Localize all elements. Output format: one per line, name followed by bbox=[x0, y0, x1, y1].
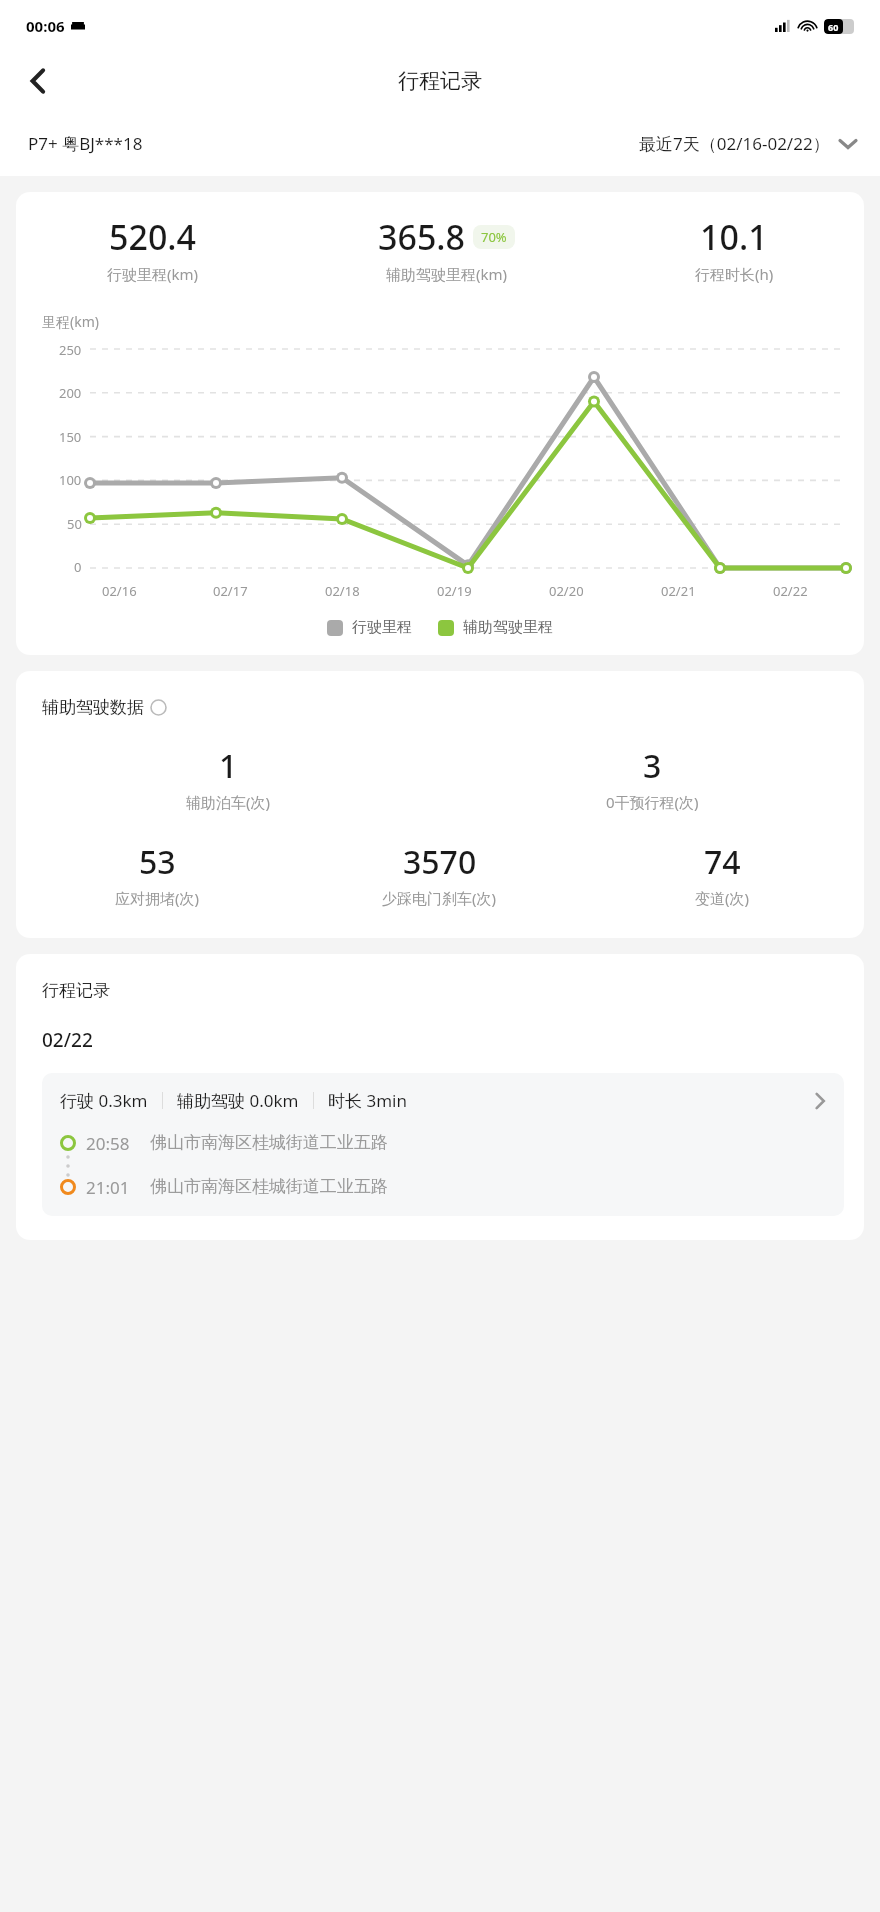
staticText: 02/19 bbox=[437, 582, 472, 600]
staticText: 21:01 bbox=[86, 1176, 130, 1199]
button[interactable]: 行驶 0.3km bbox=[42, 1073, 844, 1216]
staticText: 辅助驾驶数据 bbox=[42, 697, 144, 718]
staticText: 520.4 bbox=[109, 214, 197, 260]
staticText: 1 bbox=[219, 744, 238, 788]
button[interactable]: P7+ 粤BJ***18 bbox=[28, 132, 143, 155]
staticText: 佛山市南海区桂城街道工业五路 bbox=[150, 1176, 388, 1197]
staticText: 辅助驾驶里程(km) bbox=[386, 264, 508, 284]
staticText: 20:58 bbox=[86, 1132, 130, 1155]
staticText: 辅助驾驶 0.0km bbox=[177, 1089, 299, 1112]
staticText: 150 bbox=[59, 428, 82, 446]
staticText: 行驶里程 bbox=[352, 618, 412, 637]
staticText: 200 bbox=[59, 384, 82, 402]
staticText: 02/16 bbox=[102, 582, 137, 600]
staticText: 02/21 bbox=[661, 582, 696, 600]
staticText: 70% bbox=[481, 228, 507, 246]
staticText: 变道(次) bbox=[695, 888, 750, 908]
staticText: 50 bbox=[67, 515, 82, 533]
staticText: 02/20 bbox=[549, 582, 584, 600]
staticText: 应对拥堵(次) bbox=[115, 888, 200, 908]
staticText: 行驶 0.3km bbox=[60, 1089, 148, 1112]
staticText: 最近7天（02/16-02/22） bbox=[639, 132, 830, 155]
staticText: 行程时长(h) bbox=[695, 264, 774, 284]
staticText: 02/22 bbox=[773, 582, 808, 600]
staticText: 0干预行程(次) bbox=[606, 792, 699, 812]
staticText: 02/22 bbox=[42, 1027, 93, 1053]
staticText: 行程记录 bbox=[42, 980, 110, 1001]
staticText: 365.8 bbox=[378, 214, 466, 260]
staticText: 53 bbox=[139, 840, 176, 884]
staticText: 00:06 bbox=[26, 16, 65, 36]
staticText: 10.1 bbox=[700, 214, 768, 260]
staticText: 60 bbox=[828, 21, 839, 33]
staticText: 佛山市南海区桂城街道工业五路 bbox=[150, 1132, 388, 1153]
staticText: 辅助泊车(次) bbox=[186, 792, 271, 812]
staticText: 时长 3min bbox=[328, 1089, 407, 1112]
staticText: 250 bbox=[59, 341, 82, 359]
staticText: 3 bbox=[643, 744, 662, 788]
staticText: 行驶里程(km) bbox=[107, 264, 199, 284]
staticText: 02/17 bbox=[213, 582, 248, 600]
button[interactable]: Back bbox=[12, 55, 64, 107]
staticText: 74 bbox=[704, 840, 741, 884]
button[interactable]: 辅助驾驶数据 bbox=[42, 697, 167, 718]
staticText: 02/18 bbox=[325, 582, 360, 600]
staticText: 行程记录 bbox=[398, 68, 482, 94]
button[interactable]: 最近7天（02/16-02/22） bbox=[639, 132, 856, 155]
staticText: 里程(km) bbox=[42, 312, 99, 331]
staticText: 少踩电门刹车(次) bbox=[382, 888, 497, 908]
staticText: 0 bbox=[74, 558, 82, 576]
staticText: 100 bbox=[59, 471, 82, 489]
staticText: 3570 bbox=[403, 840, 477, 884]
staticText: 辅助驾驶里程 bbox=[463, 618, 553, 637]
